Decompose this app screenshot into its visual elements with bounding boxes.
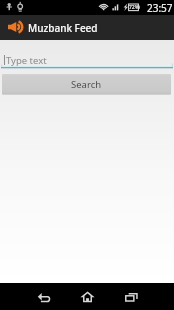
staticText: Search: [71, 78, 102, 91]
staticText: Type text: [6, 54, 47, 67]
staticText: Muzbank Feed: [28, 21, 98, 35]
button[interactable]: Back: [30, 283, 56, 310]
button[interactable]: Type text: [0, 47, 174, 69]
button[interactable]: Home: [74, 283, 100, 310]
staticText: 72%: [129, 4, 140, 11]
button[interactable]: Recent apps: [118, 283, 144, 310]
staticText: 23:57: [147, 1, 173, 15]
button[interactable]: Search: [2, 74, 171, 95]
